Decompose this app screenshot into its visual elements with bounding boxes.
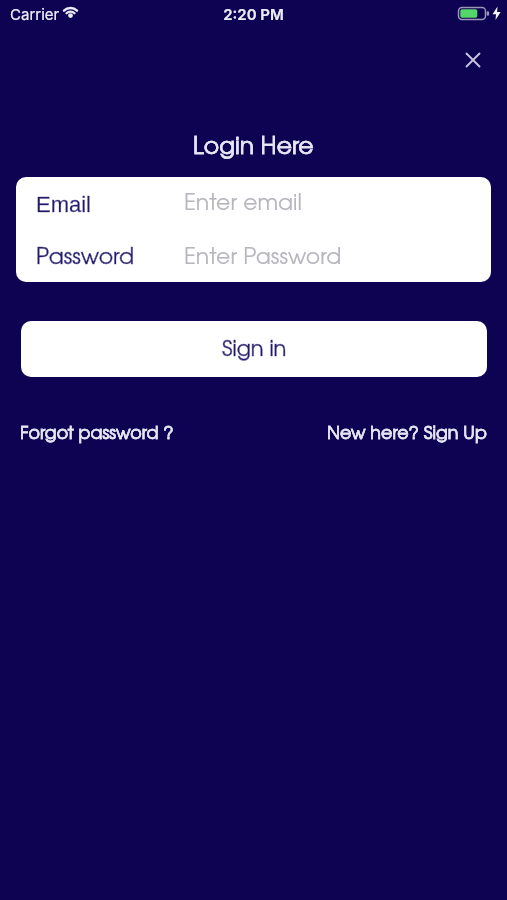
staticText: Enter email bbox=[184, 194, 302, 214]
staticText: New here? Sign Up bbox=[327, 426, 487, 442]
staticText: Password bbox=[36, 248, 135, 268]
staticText: Login Here bbox=[193, 137, 314, 159]
staticText: Email bbox=[36, 192, 92, 217]
staticText: Forgot password ? bbox=[20, 426, 174, 442]
button[interactable]: Forgot password ? bbox=[20, 426, 174, 442]
staticText: Carrier bbox=[10, 5, 60, 23]
staticText: Sign in bbox=[222, 340, 287, 360]
staticText: New here? Sign Up bbox=[327, 426, 487, 442]
staticText: Login Here bbox=[193, 137, 314, 159]
staticText: Forgot password ? bbox=[20, 426, 174, 442]
button[interactable]: New here? Sign Up bbox=[327, 426, 487, 442]
staticText: Email bbox=[36, 192, 92, 217]
button[interactable]: Password bbox=[16, 229, 491, 282]
button[interactable] bbox=[457, 44, 489, 76]
button[interactable]: Sign in bbox=[21, 321, 487, 377]
button[interactable]: Email bbox=[16, 177, 491, 229]
staticText: Enter Password bbox=[184, 248, 342, 268]
staticText: 2:20 PM bbox=[0, 5, 507, 23]
staticText: Sign in bbox=[222, 340, 287, 360]
staticText: Password bbox=[36, 248, 135, 268]
